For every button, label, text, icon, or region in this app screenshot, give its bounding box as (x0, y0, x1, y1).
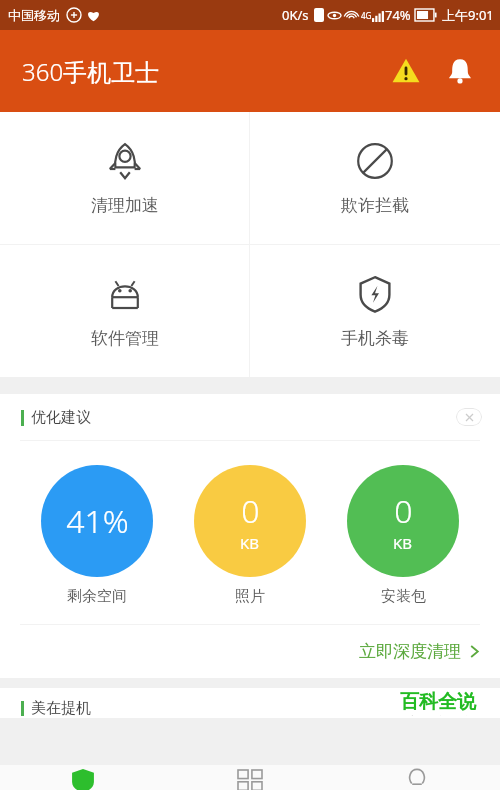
button[interactable]: 立即深度清理 (0, 635, 500, 678)
button[interactable]: 41% (41, 465, 153, 606)
staticText: 41% (66, 499, 129, 543)
staticText: 中国移动 (8, 7, 60, 23)
staticText: 4G (361, 10, 372, 21)
staticText: 欺诈拦截 (341, 195, 409, 216)
button[interactable]: Protection (0, 765, 166, 790)
staticText: KB (393, 533, 413, 553)
button[interactable]: 0 (347, 465, 459, 606)
button[interactable]: 手机杀毒 (250, 245, 500, 377)
staticText: 百科全说 (400, 690, 476, 714)
button[interactable]: Notifications (438, 49, 482, 93)
staticText: 0 (241, 489, 260, 533)
staticText: 软件管理 (91, 328, 159, 349)
button[interactable]: 清理加速 (0, 112, 249, 244)
staticText: 0K/s (282, 6, 309, 24)
button[interactable]: 欺诈拦截 (250, 112, 500, 244)
staticText: 清理加速 (91, 195, 159, 216)
staticText: 74% (385, 6, 411, 24)
button[interactable]: Tools (166, 765, 333, 790)
button[interactable]: 软件管理 (0, 245, 249, 377)
staticText: 360手机卫士 (22, 55, 160, 88)
button[interactable]: Discover (333, 765, 500, 790)
staticText: 美在提机 (31, 699, 91, 718)
staticText: 照片 (235, 587, 265, 606)
button[interactable]: Dismiss (456, 408, 482, 426)
button[interactable]: Warnings (384, 49, 428, 93)
staticText: 剩余空间 (67, 587, 127, 606)
staticText: 0 (394, 489, 413, 533)
button[interactable]: 0 (194, 465, 306, 606)
staticText: 手机杀毒 (341, 328, 409, 349)
staticText: KB (240, 533, 260, 553)
staticText: 优化建议 (31, 408, 91, 427)
staticText: 安装包 (381, 587, 426, 606)
staticText: 立即深度清理 (359, 641, 461, 662)
staticText: 上午9:01 (442, 6, 494, 24)
